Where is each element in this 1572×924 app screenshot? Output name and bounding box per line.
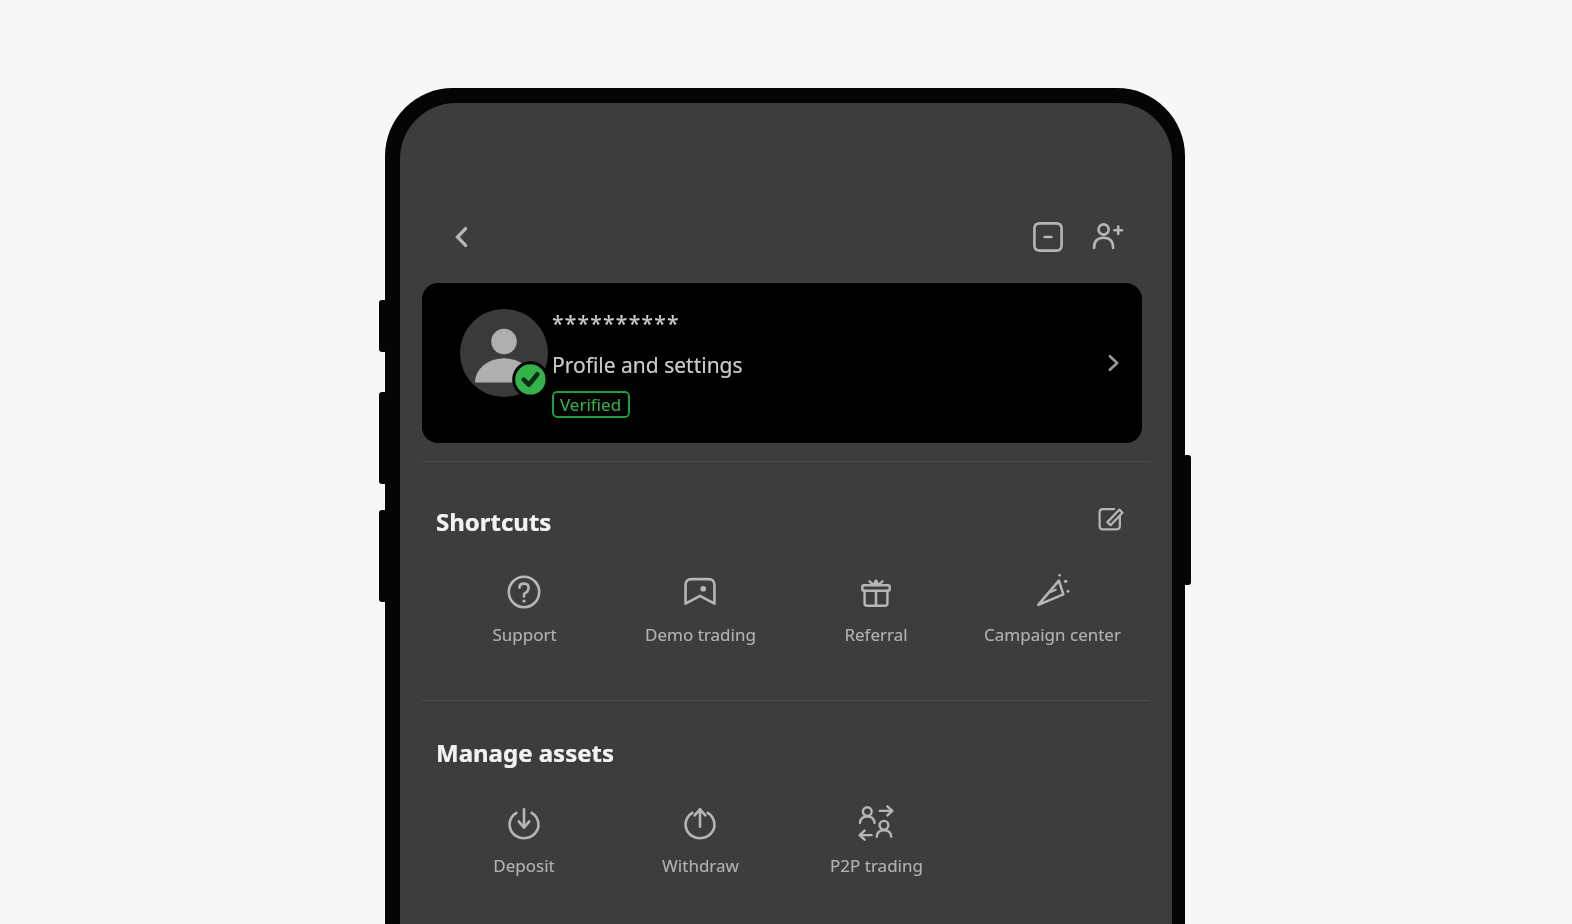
staticText: Campaign center [984, 623, 1121, 646]
button[interactable]: Demo trading [612, 565, 788, 654]
staticText: Profile and settings [552, 351, 743, 380]
button[interactable]: Edit shortcuts [1086, 495, 1134, 543]
button[interactable]: Scan QR code [1022, 211, 1074, 263]
button[interactable]: Deposit [436, 796, 612, 885]
button[interactable]: P2P trading [788, 796, 964, 885]
button[interactable]: Referral [788, 565, 964, 654]
button[interactable]: Campaign center [964, 565, 1140, 654]
staticText: Support [492, 623, 557, 646]
button[interactable]: Back [436, 211, 488, 263]
staticText: P2P trading [830, 854, 923, 877]
button[interactable]: ********** [422, 283, 1142, 443]
button[interactable]: Support [436, 565, 612, 654]
staticText: Deposit [493, 854, 555, 877]
staticText: Withdraw [662, 854, 739, 877]
staticText: ********** [552, 309, 680, 338]
staticText: Manage assets [436, 736, 614, 769]
button[interactable]: Invite friends [1081, 211, 1133, 263]
staticText: Shortcuts [436, 505, 552, 538]
staticText: Referral [844, 623, 908, 646]
staticText: Demo trading [645, 623, 756, 646]
button[interactable]: Withdraw [612, 796, 788, 885]
staticText: Verified [560, 393, 622, 416]
